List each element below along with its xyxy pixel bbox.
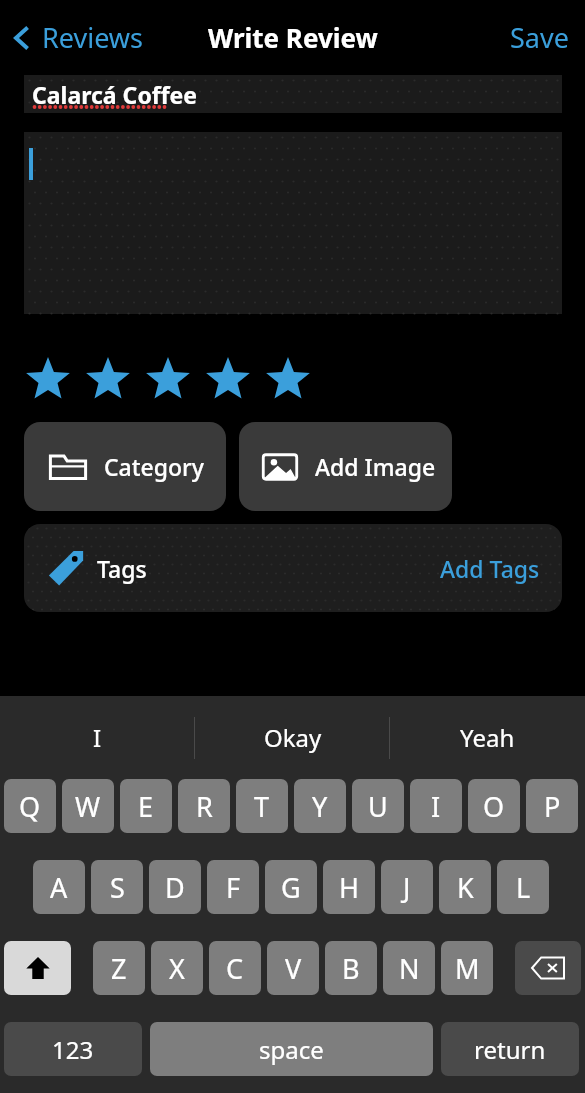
staticText: space <box>259 1033 324 1066</box>
button[interactable]: D <box>149 860 201 914</box>
button[interactable]: L <box>497 860 549 914</box>
button[interactable]: Reviews <box>12 19 144 56</box>
button[interactable]: J <box>381 860 433 914</box>
staticText: Category <box>104 451 204 482</box>
button[interactable]: Yeah <box>390 696 585 779</box>
staticText: Okay <box>264 721 322 754</box>
staticText: N <box>399 950 420 987</box>
button[interactable]: Q <box>4 779 56 833</box>
button[interactable]: Z <box>93 941 145 995</box>
staticText: Tags <box>97 553 147 584</box>
button[interactable]: Star 4 <box>204 356 252 404</box>
button[interactable]: Star 1 <box>24 356 72 404</box>
staticText: F <box>226 869 241 906</box>
staticText: Reviews <box>42 19 144 56</box>
staticText: Y <box>312 788 328 825</box>
button[interactable]: O <box>468 779 520 833</box>
button[interactable]: A <box>33 860 85 914</box>
staticText: T <box>254 788 270 825</box>
button[interactable]: Okay <box>195 696 390 779</box>
button[interactable]: Calarcá Coffee <box>24 75 562 113</box>
staticText: return <box>474 1033 546 1066</box>
button[interactable]: U <box>352 779 404 833</box>
button[interactable]: F <box>207 860 259 914</box>
button[interactable]: B <box>325 941 377 995</box>
button[interactable]: space <box>150 1022 433 1076</box>
staticText: L <box>516 869 531 906</box>
button[interactable]: Save <box>510 19 569 56</box>
button[interactable]: S <box>91 860 143 914</box>
staticText: Save <box>510 19 569 56</box>
staticText: I <box>93 721 102 754</box>
staticText: Yeah <box>460 721 515 754</box>
button[interactable]: Star 5 <box>264 356 312 404</box>
button[interactable]: G <box>265 860 317 914</box>
button[interactable]: return <box>441 1022 579 1076</box>
button[interactable]: C <box>209 941 261 995</box>
staticText: X <box>169 950 185 987</box>
button[interactable]: X <box>151 941 203 995</box>
staticText: H <box>339 869 360 906</box>
staticText: W <box>75 788 101 825</box>
staticText: J <box>403 869 411 906</box>
button[interactable]: R <box>178 779 230 833</box>
staticText: 123 <box>52 1033 94 1066</box>
staticText: C <box>226 950 244 987</box>
button[interactable]: Tags <box>24 524 562 612</box>
button[interactable]: Category <box>24 422 226 511</box>
button[interactable]: P <box>526 779 578 833</box>
staticText: A <box>50 869 68 906</box>
button[interactable]: E <box>120 779 172 833</box>
staticText: Q <box>19 788 41 825</box>
button[interactable]: Star 3 <box>144 356 192 404</box>
button[interactable]: Add Image <box>239 422 452 511</box>
staticText: S <box>110 869 125 906</box>
button[interactable]: H <box>323 860 375 914</box>
staticText: E <box>138 788 154 825</box>
button[interactable]: N <box>383 941 435 995</box>
button[interactable]: W <box>62 779 114 833</box>
staticText: R <box>196 788 213 825</box>
button[interactable]: I <box>0 696 195 779</box>
staticText: G <box>281 869 301 906</box>
staticText: P <box>544 788 561 825</box>
button[interactable]: T <box>236 779 288 833</box>
button[interactable]: M <box>441 941 493 995</box>
button[interactable]: I <box>410 779 462 833</box>
button[interactable]: Star 2 <box>84 356 132 404</box>
button[interactable]: 123 <box>4 1022 142 1076</box>
staticText: I <box>431 788 441 825</box>
staticText: Z <box>111 950 127 987</box>
button[interactable]: Backspace <box>515 941 581 995</box>
staticText: Add Image <box>315 451 436 482</box>
staticText: M <box>455 950 480 987</box>
button[interactable]: Add Tags <box>440 553 540 584</box>
staticText: Calarcá Coffee <box>32 79 197 110</box>
button[interactable]: Y <box>294 779 346 833</box>
staticText: Add Tags <box>440 553 540 584</box>
staticText: V <box>285 950 302 987</box>
staticText: D <box>165 869 185 906</box>
staticText: U <box>368 788 388 825</box>
staticText: Write Review <box>208 20 378 55</box>
staticText: K <box>457 869 474 906</box>
button[interactable] <box>24 132 562 314</box>
staticText: B <box>342 950 360 987</box>
button[interactable]: Shift <box>4 941 71 995</box>
button[interactable]: V <box>267 941 319 995</box>
button[interactable]: K <box>439 860 491 914</box>
staticText: O <box>483 788 505 825</box>
